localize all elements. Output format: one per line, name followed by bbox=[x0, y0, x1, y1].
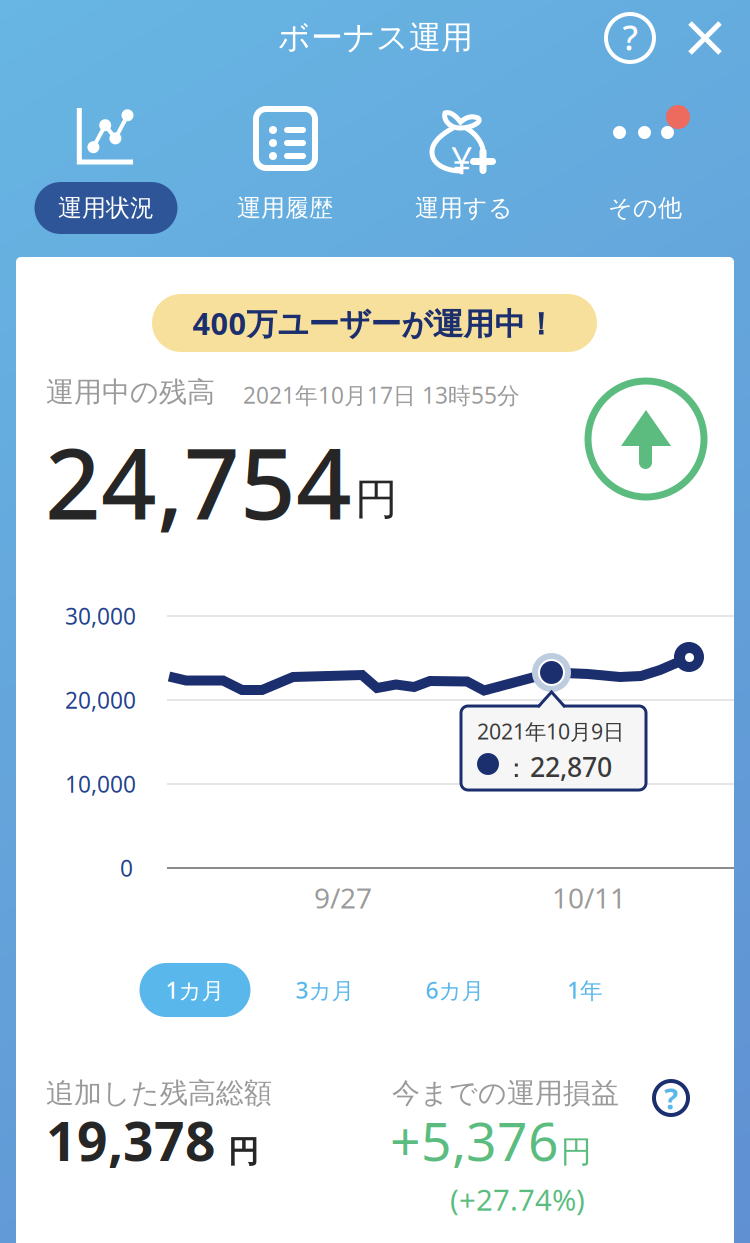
staticText: ：22,870 bbox=[503, 749, 612, 785]
staticText: (+27.74%) bbox=[450, 1180, 585, 1219]
button[interactable]: ¥ bbox=[376, 106, 552, 246]
staticText: その他 bbox=[608, 193, 682, 223]
button[interactable]: 閉じる bbox=[675, 8, 735, 68]
button[interactable]: ヘルプ bbox=[600, 8, 660, 68]
button[interactable]: 運用履歴 bbox=[197, 106, 373, 246]
staticText: 今までの運用損益 bbox=[392, 1076, 619, 1110]
staticText: 1年 bbox=[567, 975, 603, 1005]
staticText: 9/27 bbox=[314, 879, 372, 916]
staticText: 10/11 bbox=[552, 879, 626, 916]
staticText: 10,000 bbox=[65, 769, 136, 799]
staticText: 運用する bbox=[415, 193, 513, 223]
staticText: 6カ月 bbox=[425, 975, 484, 1005]
staticText: 円 bbox=[355, 473, 398, 525]
staticText: ? bbox=[664, 1078, 678, 1117]
staticText: +5,376 bbox=[390, 1105, 559, 1176]
button[interactable]: 6カ月 bbox=[390, 960, 520, 1020]
button[interactable]: 3カ月 bbox=[260, 960, 390, 1020]
staticText: 2021年10月9日 bbox=[477, 717, 624, 745]
staticText: 3カ月 bbox=[295, 975, 354, 1005]
staticText: 0 bbox=[120, 853, 133, 883]
button[interactable]: 1年 bbox=[520, 960, 650, 1020]
button[interactable]: 運用損益の説明 bbox=[647, 1074, 695, 1122]
staticText: 円 bbox=[228, 1133, 259, 1171]
staticText: 1カ月 bbox=[165, 975, 224, 1005]
staticText: 運用中の残高 bbox=[46, 375, 215, 409]
staticText: ? bbox=[622, 14, 637, 60]
staticText: 19,378 bbox=[46, 1105, 216, 1176]
staticText: 30,000 bbox=[65, 601, 136, 631]
staticText: 運用履歴 bbox=[237, 193, 333, 223]
staticText: 24,754 bbox=[45, 417, 352, 546]
staticText: 2021年10月17日 13時55分 bbox=[243, 380, 520, 410]
staticText: ボーナス運用 bbox=[278, 18, 473, 57]
button[interactable]: 1カ月 bbox=[130, 960, 260, 1020]
staticText: 400万ユーザーが運用中！ bbox=[192, 303, 556, 343]
staticText: 20,000 bbox=[65, 685, 136, 715]
button[interactable]: 運用状況 bbox=[18, 106, 194, 246]
staticText: 円 bbox=[561, 1133, 592, 1171]
staticText: 追加した残高総額 bbox=[46, 1076, 272, 1110]
staticText: ¥ bbox=[451, 135, 472, 185]
button[interactable]: その他 bbox=[557, 106, 733, 246]
staticText: 運用状況 bbox=[58, 193, 154, 223]
